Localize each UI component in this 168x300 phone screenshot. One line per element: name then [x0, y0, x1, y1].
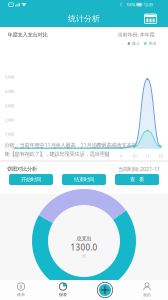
- staticText: 饼图对比分析: [7, 166, 37, 172]
- staticText: 5: [67, 153, 69, 159]
- staticText: 结束时间: [74, 176, 94, 183]
- staticText: 支出: [148, 41, 156, 46]
- staticText: 开始时间: [21, 176, 41, 183]
- staticText: 1,000: [5, 131, 14, 137]
- staticText: 0: [12, 146, 14, 151]
- staticText: 100%: [126, 2, 135, 7]
- staticText: 6: [80, 153, 82, 159]
- staticText: 12: [159, 153, 163, 159]
- staticText: 8: [107, 153, 109, 159]
- staticText: 9: [120, 153, 122, 159]
- staticText: 1300.0: [70, 242, 97, 253]
- button[interactable]: 开始时间: [9, 174, 53, 185]
- staticText: 2,000: [5, 117, 14, 122]
- staticText: 当前年份: 本年度: [117, 31, 154, 38]
- staticText: 10: [132, 153, 136, 159]
- staticText: ☾: [119, 2, 124, 8]
- button[interactable]: 查 看: [115, 174, 159, 185]
- staticText: 衡【您有存款了】，建议您享受生活，适当理财: [4, 151, 109, 157]
- staticText: 3,000: [5, 103, 14, 108]
- staticText: 账单: [17, 292, 25, 297]
- button[interactable]: 报表: [42, 280, 84, 300]
- staticText: 4,000: [5, 89, 14, 94]
- staticText: 1月: [12, 153, 18, 159]
- button[interactable]: 我的: [126, 280, 168, 300]
- staticText: 5,000: [5, 74, 14, 80]
- staticText: 4: [54, 153, 56, 159]
- button[interactable]: Calendar: [140, 11, 160, 27]
- staticText: 3: [41, 153, 43, 159]
- staticText: 我的: [143, 292, 151, 297]
- staticText: 7: [94, 153, 96, 159]
- button[interactable]: ¥: [0, 280, 42, 300]
- staticText: 分析：当前年度中11月收入最高，11月消费最高或收支不平: [4, 141, 136, 149]
- button[interactable]: 结束时间: [62, 174, 106, 185]
- staticText: 查 看: [130, 176, 144, 183]
- staticText: 12:09: [143, 2, 152, 7]
- staticText: ¥: [19, 283, 22, 290]
- staticText: 统计分析: [68, 14, 100, 23]
- staticText: 元: [82, 253, 86, 258]
- staticText: 当前时间: 2021-11: [118, 165, 160, 173]
- staticText: 报表: [59, 292, 67, 297]
- staticText: 11: [145, 153, 149, 159]
- staticText: 收入: [132, 41, 140, 46]
- staticText: 总支出: [76, 235, 91, 242]
- button[interactable]: Add record: [84, 280, 126, 300]
- staticText: 年度支入支出对比: [7, 31, 47, 38]
- staticText: 2: [28, 153, 30, 159]
